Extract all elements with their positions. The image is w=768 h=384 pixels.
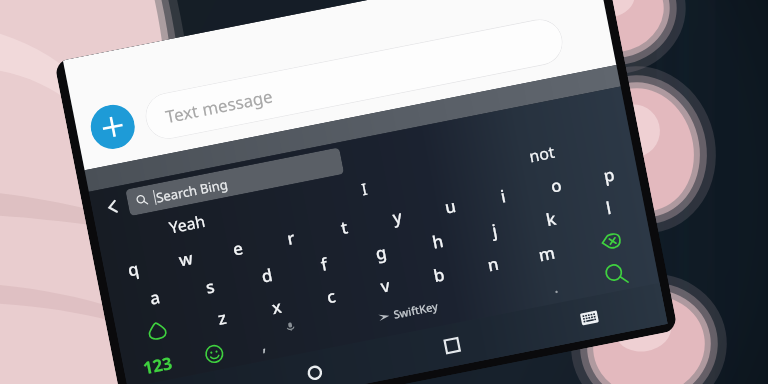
staticText: x (270, 295, 284, 319)
button[interactable]: n (463, 243, 523, 286)
button[interactable]: Recents (379, 311, 524, 379)
button[interactable]: f (292, 242, 355, 286)
button[interactable]: Text message (142, 15, 566, 143)
button[interactable]: u (420, 185, 479, 227)
staticText: j (490, 218, 499, 242)
staticText: y (390, 205, 404, 229)
button[interactable]: not (450, 120, 634, 188)
button[interactable]: o (526, 164, 585, 206)
staticText: z (216, 306, 229, 330)
button[interactable]: Switch keyboard (516, 284, 662, 352)
button[interactable]: Yeah (95, 190, 279, 258)
staticText: . (551, 275, 560, 298)
staticText: r (285, 226, 297, 250)
button[interactable]: Backspace (571, 217, 651, 264)
button[interactable]: Shift (117, 307, 198, 354)
button[interactable]: d (235, 253, 298, 297)
button[interactable]: k (519, 197, 583, 241)
staticText: SwiftKey (392, 298, 439, 322)
button[interactable]: y (367, 195, 426, 237)
staticText: Search Bing (155, 175, 230, 206)
button[interactable]: Add attachment (87, 101, 139, 153)
button[interactable]: I (272, 155, 456, 223)
button[interactable]: r (261, 216, 320, 258)
staticText: u (442, 194, 458, 219)
staticText: h (430, 229, 445, 254)
staticText: m (536, 240, 558, 266)
button[interactable]: . (528, 265, 582, 307)
button[interactable]: Back (96, 190, 129, 223)
staticText: I (360, 178, 370, 200)
button[interactable]: , (236, 322, 290, 365)
staticText: l (604, 196, 613, 219)
button[interactable]: t (314, 206, 373, 248)
button[interactable]: s (179, 265, 241, 308)
staticText: not (527, 141, 557, 167)
button[interactable]: j (462, 208, 526, 252)
staticText: e (231, 236, 245, 261)
staticText: , (259, 332, 268, 356)
button[interactable]: b (409, 253, 469, 296)
staticText: Text message (164, 84, 275, 128)
staticText: q (126, 257, 141, 281)
staticText: Yeah (167, 210, 208, 239)
button[interactable]: 123 (123, 342, 192, 384)
button[interactable]: Space (283, 274, 535, 356)
button[interactable]: c (301, 275, 361, 318)
button[interactable]: p (579, 154, 638, 195)
button[interactable]: Search Bing (125, 147, 344, 216)
button[interactable]: e (208, 227, 267, 269)
staticText: d (259, 263, 275, 288)
button[interactable]: Emoji (186, 332, 242, 375)
staticText: o (548, 173, 564, 198)
button[interactable]: i (473, 174, 532, 216)
staticText: w (177, 246, 195, 271)
button[interactable]: m (517, 232, 577, 275)
staticText: n (485, 252, 501, 276)
staticText: p (601, 162, 617, 187)
staticText: k (544, 207, 558, 231)
staticText: v (379, 273, 392, 298)
staticText: c (325, 284, 338, 308)
button[interactable]: z (191, 296, 252, 339)
staticText: s (203, 274, 217, 299)
button[interactable]: Home (241, 338, 387, 384)
button[interactable]: a (123, 276, 185, 319)
staticText: 123 (141, 351, 175, 379)
button[interactable]: v (355, 264, 415, 307)
staticText: b (432, 262, 447, 287)
button[interactable]: w (156, 237, 214, 279)
button[interactable]: g (349, 231, 412, 275)
button[interactable]: x (246, 285, 307, 328)
button[interactable]: h (405, 220, 469, 263)
button[interactable]: q (104, 248, 162, 289)
staticText: a (147, 285, 162, 310)
button[interactable]: Search (575, 250, 657, 298)
staticText: g (373, 240, 388, 265)
staticText: t (338, 215, 350, 239)
staticText: i (498, 184, 508, 208)
staticText: f (318, 252, 329, 276)
button[interactable]: l (576, 186, 639, 229)
